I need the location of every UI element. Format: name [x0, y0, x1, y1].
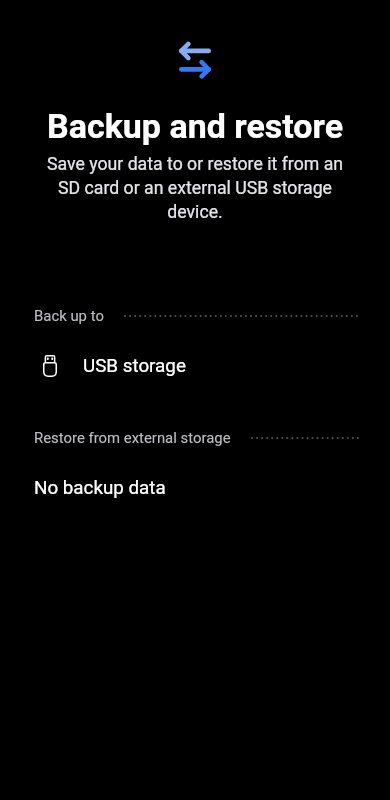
- other: Backup and restore: [179, 42, 211, 79]
- staticText: USB storage: [83, 355, 186, 377]
- staticText: Save your data to or restore it from an …: [38, 154, 352, 222]
- staticText: Backup and restore: [16, 106, 374, 146]
- staticText: No backup data: [34, 477, 166, 499]
- staticText: Restore from external storage: [34, 429, 231, 446]
- button[interactable]: USB storage: [0, 344, 390, 388]
- staticText: Back up to: [34, 307, 104, 324]
